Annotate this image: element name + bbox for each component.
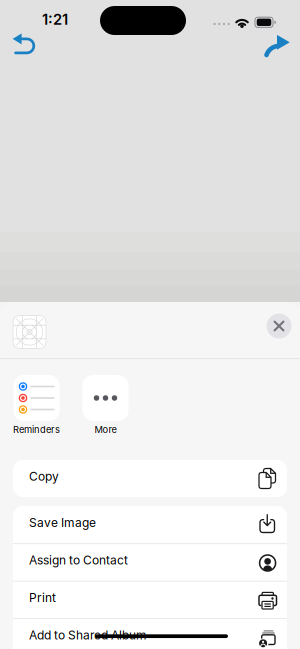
- button[interactable]: More: [75, 370, 135, 436]
- button[interactable]: Print: [13, 581, 287, 619]
- button[interactable]: Close: [266, 313, 291, 338]
- button[interactable]: Copy: [13, 460, 287, 497]
- staticText: Assign to Contact: [29, 553, 128, 567]
- button[interactable]: Add to Shared Album: [13, 619, 287, 649]
- button[interactable]: Undo: [11, 32, 37, 56]
- button[interactable]: Assign to Contact: [13, 544, 287, 581]
- staticText: More: [94, 424, 116, 435]
- staticText: Reminders: [13, 424, 60, 435]
- staticText: Print: [29, 591, 56, 605]
- button[interactable]: Save Image: [13, 506, 287, 544]
- staticText: Add to Shared Album: [29, 628, 147, 642]
- staticText: Copy: [29, 469, 59, 483]
- button[interactable]: Forward: [265, 34, 290, 56]
- staticText: Save Image: [29, 516, 96, 530]
- staticText: 1:21: [42, 11, 68, 28]
- button[interactable]: Reminders: [6, 370, 66, 436]
